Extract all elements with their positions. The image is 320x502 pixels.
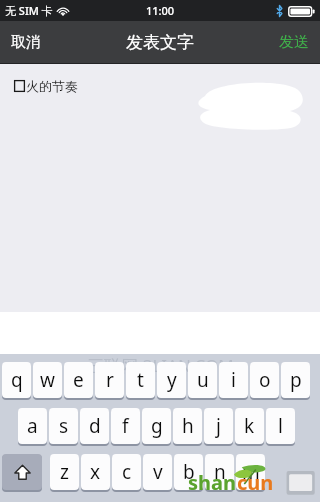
staticText: d bbox=[89, 413, 101, 439]
button[interactable]: e bbox=[64, 362, 93, 398]
staticText: e bbox=[73, 367, 84, 393]
button[interactable]: g bbox=[142, 408, 171, 444]
staticText: cun bbox=[237, 469, 274, 496]
button[interactable]: v bbox=[143, 454, 172, 490]
button[interactable]: t bbox=[126, 362, 155, 398]
button[interactable]: u bbox=[188, 362, 217, 398]
staticText: 取消 bbox=[11, 33, 41, 52]
staticText: z bbox=[60, 459, 69, 485]
button[interactable]: p bbox=[281, 362, 310, 398]
button[interactable]: b bbox=[174, 454, 203, 490]
button[interactable]: 发送 bbox=[268, 24, 320, 61]
staticText: m bbox=[242, 459, 260, 485]
button[interactable]: w bbox=[33, 362, 62, 398]
staticText: p bbox=[290, 367, 302, 393]
button[interactable]: n bbox=[205, 454, 234, 490]
button[interactable]: f bbox=[111, 408, 140, 444]
staticText: 火的节奏 bbox=[26, 78, 78, 94]
staticText: i bbox=[231, 367, 236, 393]
staticText: u bbox=[197, 367, 209, 393]
staticText: w bbox=[40, 367, 55, 393]
button[interactable]: s bbox=[49, 408, 78, 444]
button[interactable]: o bbox=[250, 362, 279, 398]
staticText: shan bbox=[188, 469, 237, 496]
button[interactable]: z bbox=[50, 454, 79, 490]
button[interactable]: c bbox=[112, 454, 141, 490]
staticText: r bbox=[106, 367, 114, 393]
staticText: 11:00 bbox=[146, 3, 175, 18]
button[interactable]: k bbox=[235, 408, 264, 444]
button[interactable]: 火的节奏 bbox=[0, 64, 320, 312]
button[interactable]: m bbox=[236, 454, 265, 490]
staticText: h bbox=[182, 413, 194, 439]
staticText: a bbox=[27, 413, 38, 439]
staticText: y bbox=[167, 367, 177, 393]
staticText: t bbox=[137, 367, 144, 393]
staticText: b bbox=[183, 459, 195, 485]
button[interactable]: h bbox=[173, 408, 202, 444]
staticText: x bbox=[90, 459, 101, 485]
button[interactable]: q bbox=[2, 362, 31, 398]
staticText: c bbox=[122, 459, 132, 485]
staticText: s bbox=[59, 413, 69, 439]
staticText: 发送 bbox=[279, 33, 309, 52]
staticText: o bbox=[259, 367, 271, 393]
staticText: g bbox=[151, 413, 163, 439]
button[interactable]: a bbox=[18, 408, 47, 444]
button[interactable]: x bbox=[81, 454, 110, 490]
button[interactable]: 取消 bbox=[0, 24, 52, 61]
staticText: 发表文字 bbox=[126, 32, 194, 53]
staticText: f bbox=[122, 413, 129, 439]
button[interactable]: j bbox=[204, 408, 233, 444]
button[interactable]: i bbox=[219, 362, 248, 398]
button[interactable]: Shift bbox=[2, 454, 42, 490]
staticText: v bbox=[153, 459, 163, 485]
button[interactable]: d bbox=[80, 408, 109, 444]
button[interactable]: y bbox=[157, 362, 186, 398]
staticText: 无 SIM 卡 bbox=[5, 3, 53, 18]
staticText: 三联网 3LIAN.COM bbox=[87, 354, 234, 377]
staticText: q bbox=[11, 367, 23, 393]
staticText: k bbox=[244, 413, 255, 439]
button[interactable]: r bbox=[95, 362, 124, 398]
staticText: n bbox=[214, 459, 226, 485]
button[interactable]: l bbox=[266, 408, 295, 444]
staticText: l bbox=[278, 413, 283, 439]
staticText: j bbox=[216, 413, 221, 439]
